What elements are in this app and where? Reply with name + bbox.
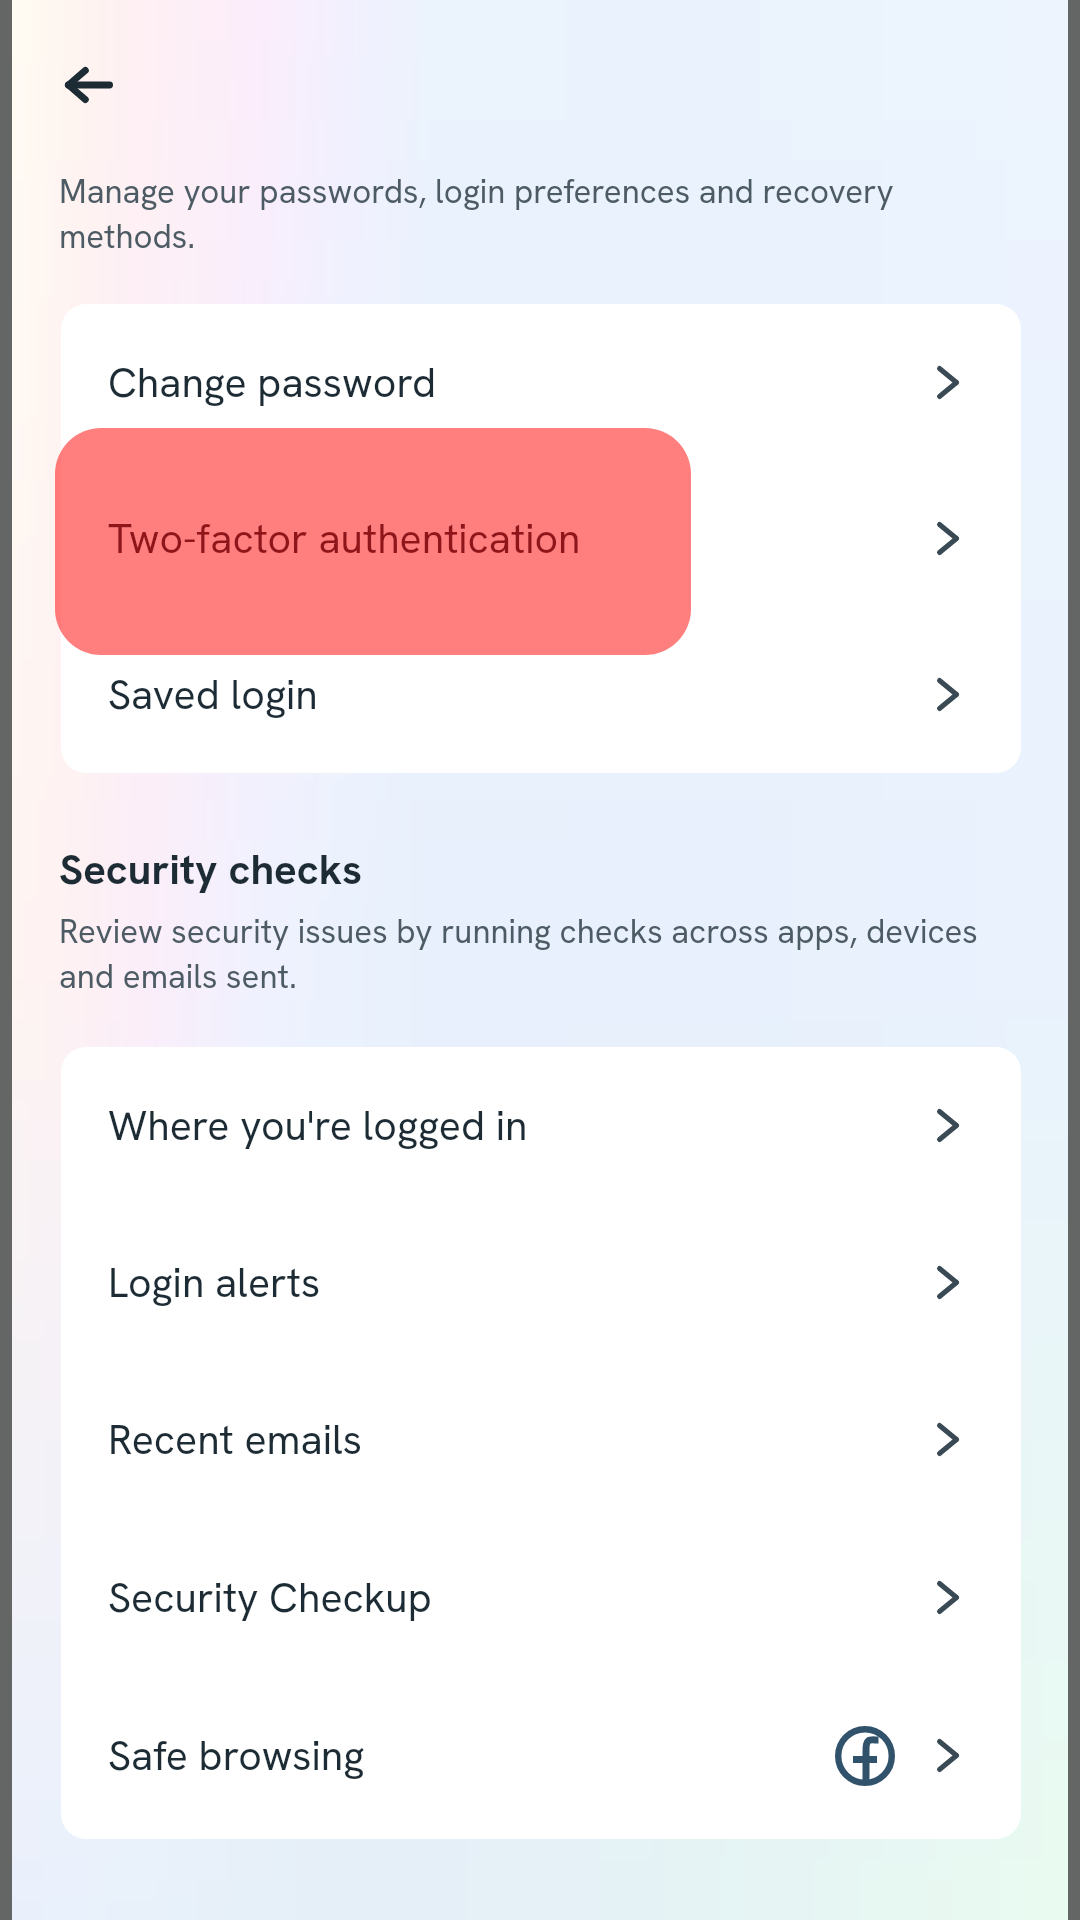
button[interactable]: Back xyxy=(53,49,125,121)
button[interactable]: Recent emails xyxy=(61,1361,1021,1518)
staticText: Security checks xyxy=(59,842,363,897)
staticText: Change password xyxy=(108,356,437,409)
button[interactable]: Two-factor authentication xyxy=(61,460,1021,616)
staticText: Safe browsing xyxy=(108,1729,365,1782)
staticText: Manage your passwords, login preferences… xyxy=(59,170,959,258)
staticText: Recent emails xyxy=(108,1413,363,1466)
staticText: Review security issues by running checks… xyxy=(59,910,1009,998)
button[interactable]: Where you're logged in xyxy=(61,1047,1021,1204)
button[interactable]: Login alerts xyxy=(61,1204,1021,1361)
staticText: Login alerts xyxy=(108,1256,321,1309)
button[interactable]: Change password xyxy=(61,304,1021,460)
other: Facebook xyxy=(834,1725,896,1787)
button[interactable]: Safe browsing xyxy=(61,1676,1021,1834)
staticText: Where you're logged in xyxy=(108,1099,528,1152)
button[interactable]: Security Checkup xyxy=(61,1518,1021,1676)
staticText: Two-factor authentication xyxy=(108,512,581,565)
staticText: Saved login xyxy=(108,668,318,721)
button[interactable]: Two-factor authentication xyxy=(55,428,691,655)
button[interactable]: Saved login xyxy=(61,616,1021,773)
staticText: Security Checkup xyxy=(108,1571,432,1624)
